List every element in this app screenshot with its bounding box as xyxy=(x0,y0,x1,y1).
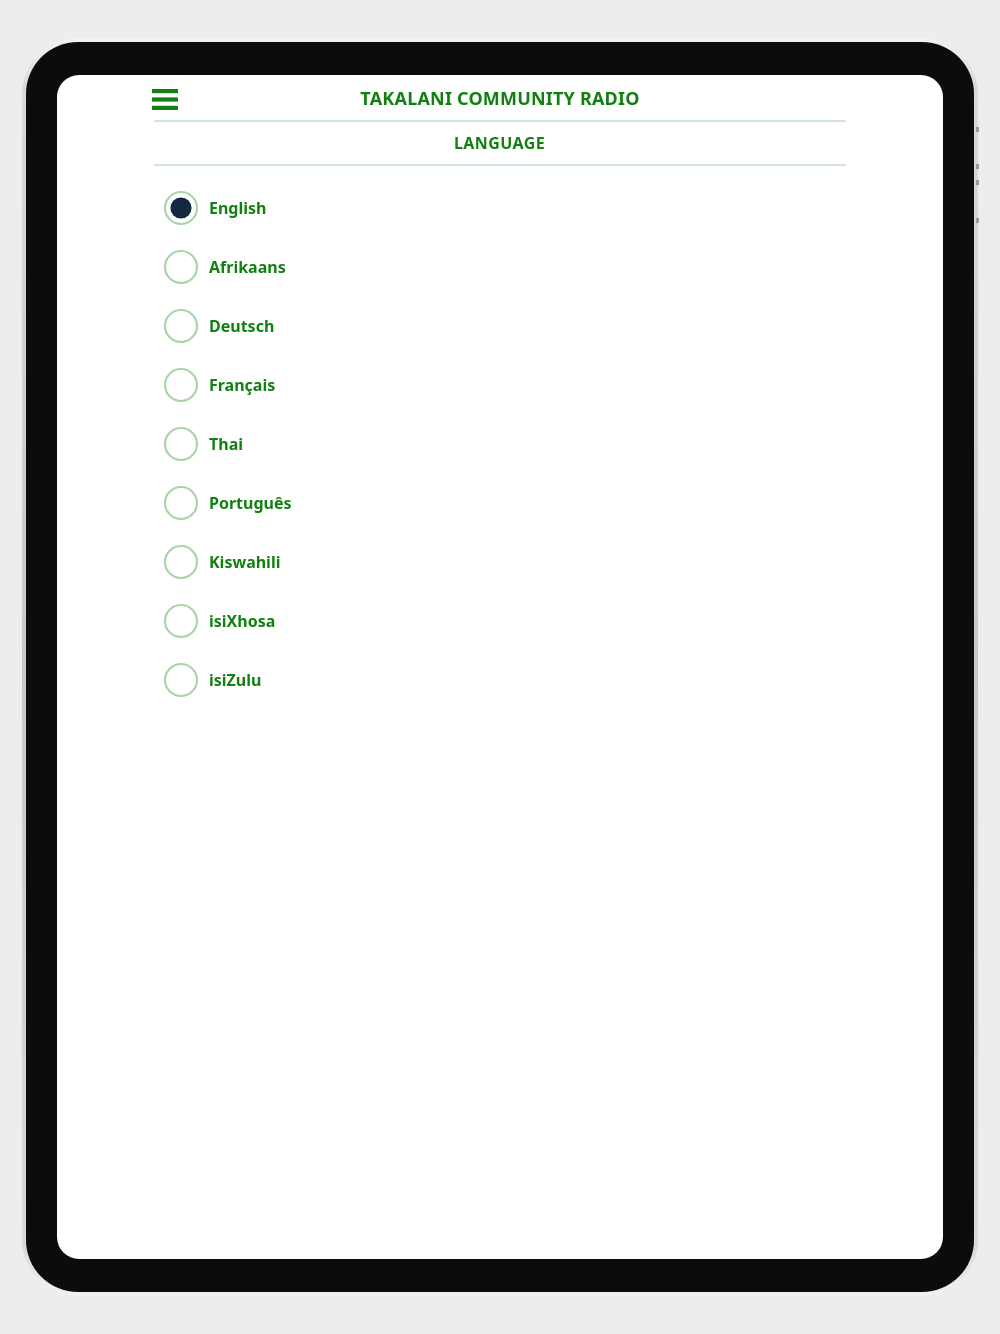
button[interactable]: Kiswahili xyxy=(57,532,943,591)
staticText: Português xyxy=(209,492,292,514)
staticText: isiZulu xyxy=(209,669,262,691)
staticText: TAKALANI COMMUNITY RADIO xyxy=(57,86,943,111)
button[interactable]: Deutsch xyxy=(57,296,943,355)
button[interactable]: Français xyxy=(57,355,943,414)
staticText: Afrikaans xyxy=(209,256,286,278)
button[interactable]: Thai xyxy=(57,414,943,473)
staticText: English xyxy=(209,197,267,219)
button[interactable]: Open navigation menu xyxy=(145,79,185,119)
staticText: Thai xyxy=(209,433,244,455)
staticText: Kiswahili xyxy=(209,551,281,573)
staticText: Français xyxy=(209,374,276,396)
staticText: Deutsch xyxy=(209,315,275,337)
button[interactable]: Português xyxy=(57,473,943,532)
button[interactable]: Afrikaans xyxy=(57,237,943,296)
button[interactable]: isiZulu xyxy=(57,650,943,709)
staticText: isiXhosa xyxy=(209,610,276,632)
button[interactable]: isiXhosa xyxy=(57,591,943,650)
button[interactable]: English xyxy=(57,178,943,237)
staticText: LANGUAGE xyxy=(454,132,546,154)
